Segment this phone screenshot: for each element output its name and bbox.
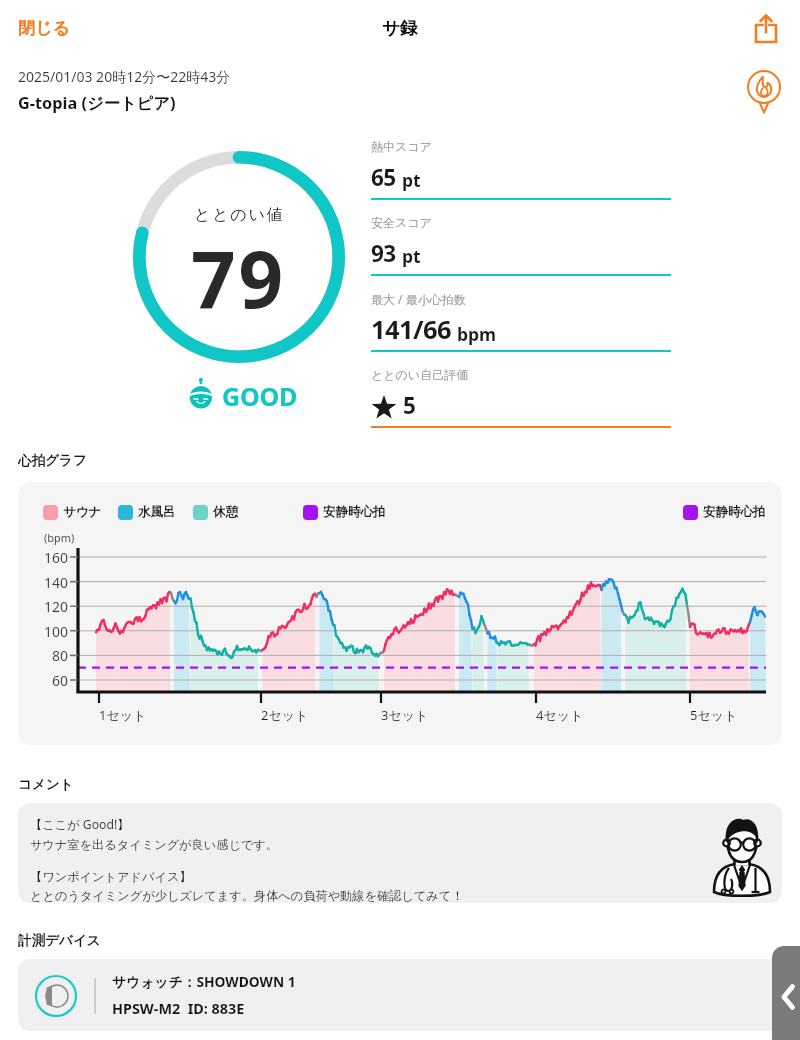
button[interactable]: Sauna rank badge [741, 69, 787, 115]
staticText: 80 [28, 646, 68, 665]
staticText: 5 [403, 390, 416, 421]
staticText: 120 [28, 597, 68, 616]
staticText: サウナ室を出るタイミングが良い感じです。 [30, 837, 279, 852]
staticText: 5セット [690, 706, 738, 724]
staticText: 2セット [261, 706, 309, 724]
staticText: HPSW-M2 ID: 883E [112, 999, 245, 1019]
staticText: 安全スコア [371, 215, 432, 230]
staticText: サウォッチ：SHOWDOWN 1 [112, 972, 296, 991]
staticText: 心拍グラフ [18, 452, 87, 469]
staticText: pt [402, 244, 421, 268]
staticText: ととのうタイミングが少しズレてます。身体への負荷や動線を確認してみて！ [30, 888, 464, 903]
staticText: 4セット [536, 706, 584, 724]
staticText: ととのい自己評価 [371, 367, 469, 382]
staticText: サ録 [382, 17, 418, 39]
staticText: 【ここが Good!】 [30, 816, 130, 833]
staticText: 1セット [99, 706, 147, 724]
staticText: bpm [457, 322, 497, 346]
staticText: 3セット [381, 706, 429, 724]
staticText: 安静時心拍 [323, 504, 386, 520]
staticText: 最大 / 最小心拍数 [371, 291, 466, 307]
staticText: (bpm) [44, 530, 75, 545]
staticText: 【ワンポイントアドバイス】 [30, 869, 192, 884]
staticText: 60 [28, 671, 68, 690]
staticText: G-topia (ジートピア) [18, 92, 176, 114]
staticText: 熱中スコア [371, 139, 432, 154]
staticText: 計測デバイス [18, 932, 101, 949]
staticText: 160 [28, 548, 68, 567]
staticText: 100 [28, 622, 68, 641]
staticText: コメント [18, 776, 74, 793]
button[interactable]: サウォッチ：SHOWDOWN 1 [18, 959, 782, 1031]
staticText: pt [402, 168, 421, 192]
staticText: 79 [191, 225, 287, 331]
staticText: GOOD [222, 379, 298, 413]
staticText: 水風呂 [138, 504, 176, 520]
staticText: 140 [28, 573, 68, 592]
staticText: 141/66 [371, 312, 451, 347]
staticText: 93 [371, 238, 396, 269]
staticText: ととのい値 [194, 205, 285, 225]
staticText: 閉じる [18, 18, 70, 39]
button[interactable]: Share [744, 6, 788, 50]
button[interactable]: 閉じる [0, 8, 88, 49]
staticText: 2025/01/03 20時12分〜22時43分 [18, 67, 231, 86]
staticText: 休憩 [213, 504, 238, 520]
staticText: 65 [371, 162, 396, 193]
staticText: サウナ [63, 504, 102, 520]
button[interactable]: Open panel [772, 946, 800, 1040]
staticText: 安静時心拍 [703, 504, 766, 520]
